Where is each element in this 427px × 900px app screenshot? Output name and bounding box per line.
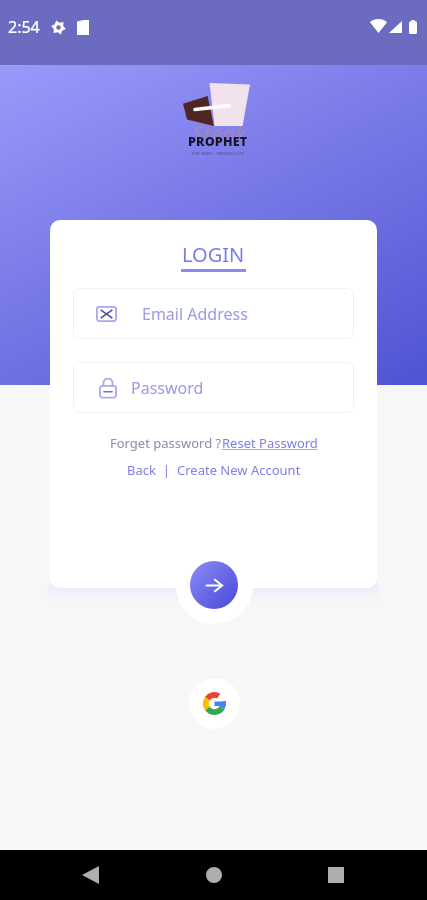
staticText: Email Address: [142, 303, 248, 325]
button[interactable]: Recent apps: [312, 859, 360, 891]
staticText: |: [156, 461, 177, 479]
staticText: Steak: [193, 118, 246, 148]
staticText: Forget password ?: [110, 434, 222, 452]
staticText: 2:54: [8, 16, 40, 38]
staticText: Reset Password: [222, 434, 318, 452]
staticText: LOGIN: [182, 241, 245, 268]
staticText: FINE MEATS · PREMIUM CUTS: [192, 151, 245, 156]
button[interactable]: Home: [190, 859, 238, 891]
button[interactable]: Back: [66, 859, 114, 891]
staticText: Password: [131, 377, 204, 399]
button[interactable]: Back: [127, 461, 156, 479]
button[interactable]: Reset Password: [222, 434, 318, 452]
button[interactable]: Create New Account: [177, 461, 301, 479]
staticText: Back: [127, 461, 156, 479]
button[interactable]: Password: [73, 362, 354, 413]
button[interactable]: Log in: [190, 561, 238, 609]
staticText: Create New Account: [177, 461, 301, 479]
staticText: PROPHET: [188, 133, 248, 150]
button[interactable]: Sign in with Google: [189, 678, 240, 729]
button[interactable]: Email Address: [73, 288, 354, 339]
